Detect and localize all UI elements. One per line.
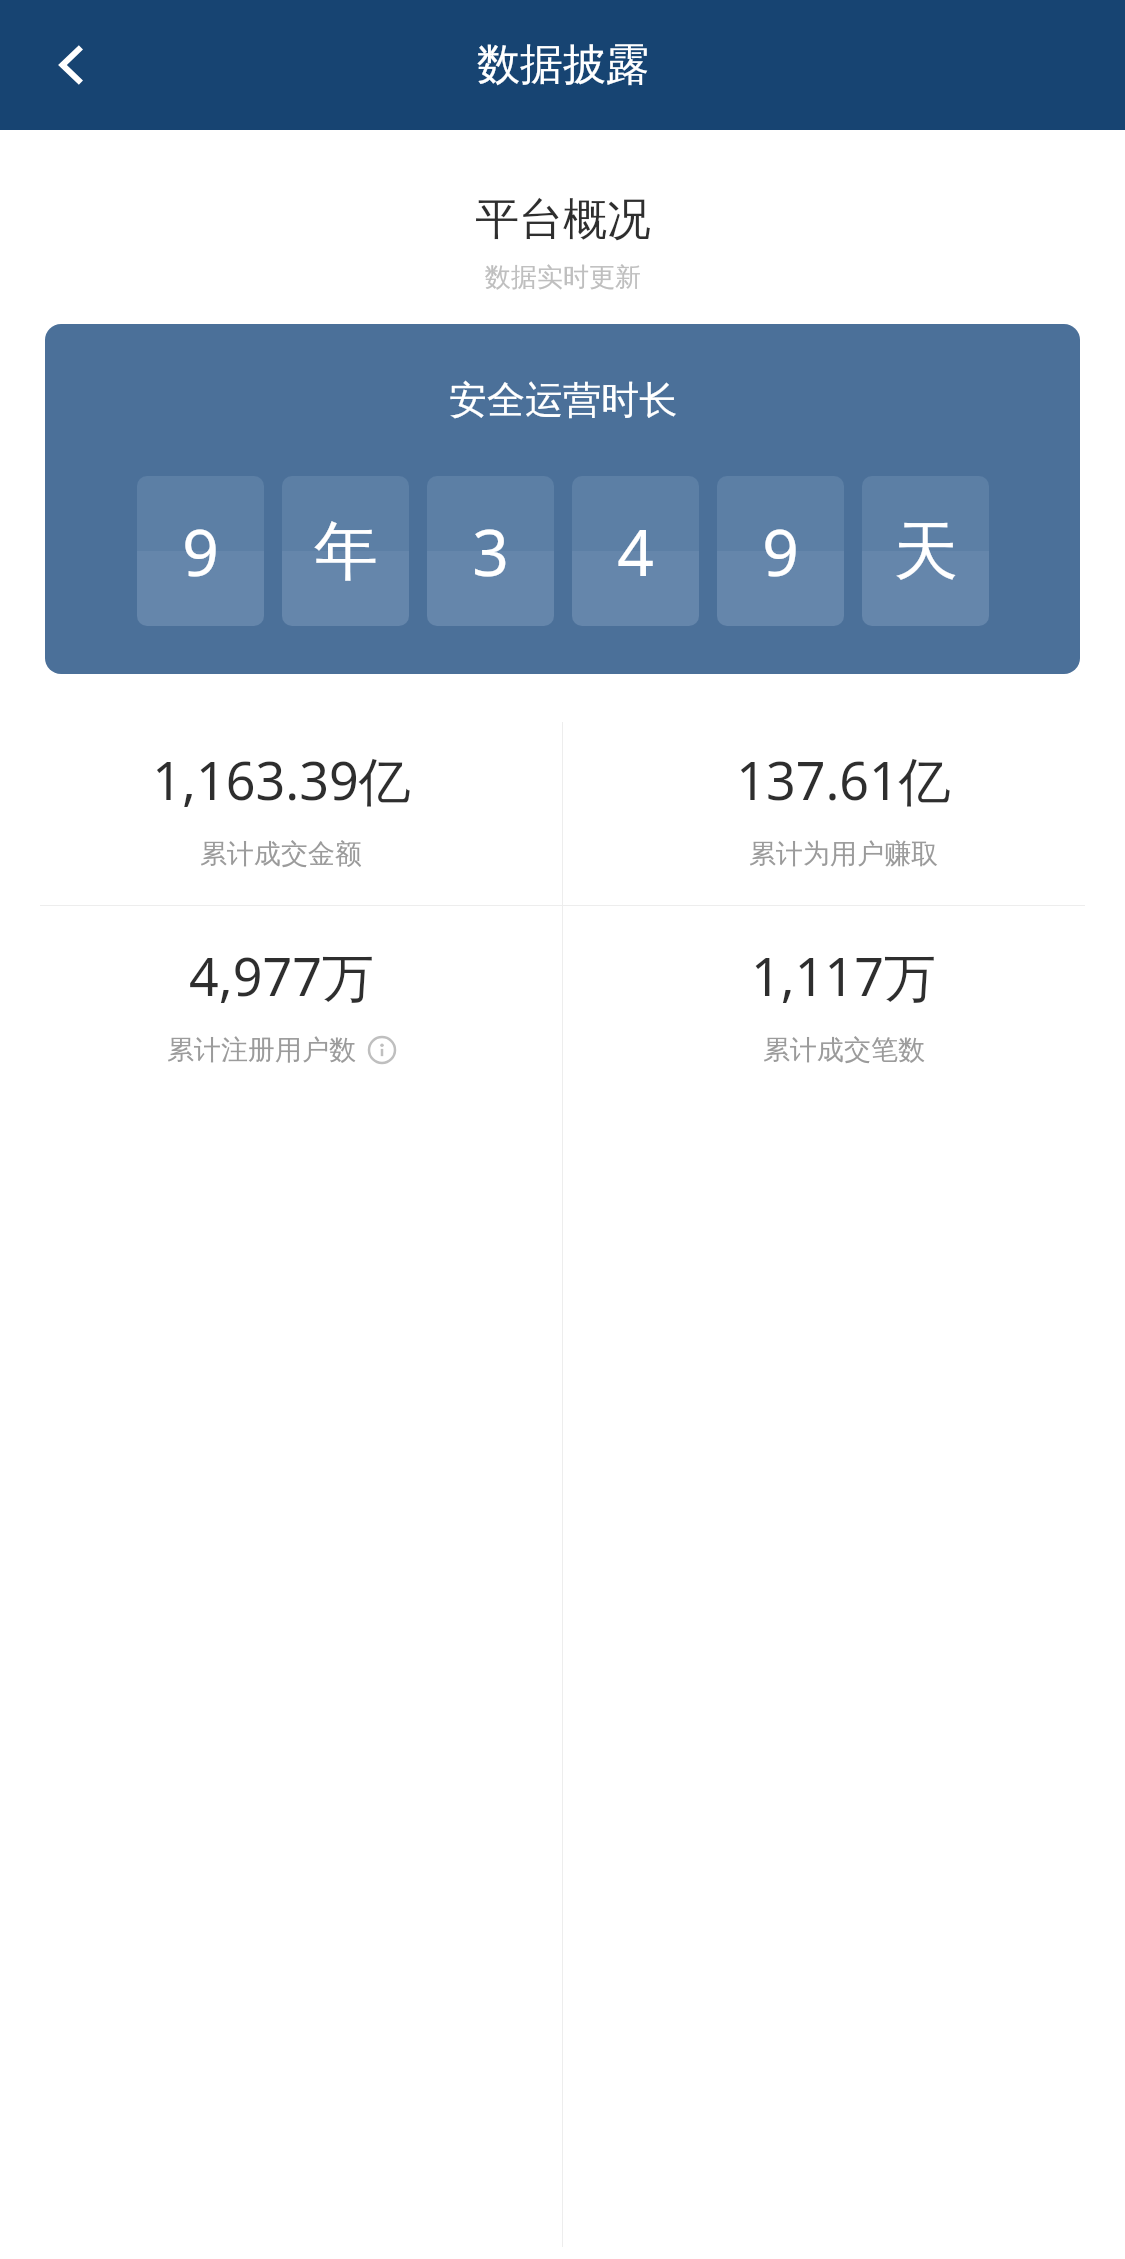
staticText: 4 <box>617 508 654 595</box>
staticText: 1,117万 <box>751 940 936 1011</box>
staticText: 累计成交笔数 <box>763 1033 925 1067</box>
staticText: 1,163.39亿 <box>152 744 411 815</box>
staticText: 年 <box>314 511 378 592</box>
staticText: 4,977万 <box>189 940 374 1011</box>
staticText: 平台概况 <box>475 192 651 247</box>
staticText: 数据实时更新 <box>485 261 641 294</box>
button[interactable]: 1,117万 <box>562 906 1125 1101</box>
staticText: 9 <box>762 508 799 595</box>
staticText: 安全运营时长 <box>449 376 677 424</box>
staticText: 天 <box>894 511 958 592</box>
button[interactable]: 137.61亿 <box>562 710 1125 905</box>
staticText: 数据披露 <box>477 38 649 92</box>
button[interactable]: Back <box>30 22 116 108</box>
button[interactable]: 4,977万 <box>0 906 562 1101</box>
button[interactable]: 1,163.39亿 <box>0 710 562 905</box>
staticText: 137.61亿 <box>736 744 951 815</box>
staticText: 9 <box>182 508 219 595</box>
button[interactable]: 安全运营时长 <box>45 324 1080 674</box>
staticText: 累计注册用户数 <box>167 1033 356 1067</box>
staticText: 累计成交金额 <box>200 837 362 871</box>
staticText: 3 <box>472 508 509 595</box>
staticText: 累计为用户赚取 <box>749 837 938 871</box>
other: Info <box>368 1036 396 1064</box>
